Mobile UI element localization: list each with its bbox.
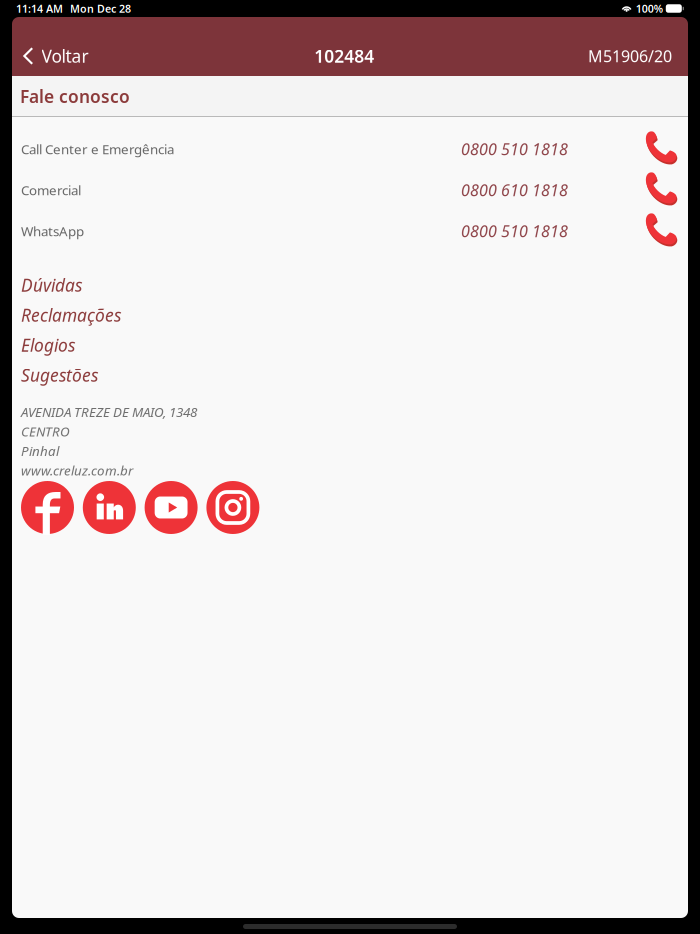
staticText: Sugestões	[21, 363, 98, 386]
staticText: Comercial	[21, 181, 81, 199]
button[interactable]: LinkedIn	[83, 481, 136, 534]
button[interactable]: Call Center e Emergência	[12, 128, 688, 169]
button[interactable]: YouTube	[145, 481, 198, 534]
staticText: 100%	[636, 1, 663, 16]
button[interactable]: Dúvidas	[12, 270, 688, 300]
button[interactable]: Facebook	[21, 481, 74, 534]
button[interactable]: Instagram	[206, 481, 259, 534]
staticText: 0800 510 1818	[461, 138, 568, 160]
staticText: www.creluz.com.br	[21, 461, 133, 479]
staticText: 11:14 AM	[16, 1, 63, 16]
staticText: 102484	[314, 44, 374, 67]
staticText: Reclamações	[21, 303, 121, 326]
button[interactable]: Comercial	[12, 169, 688, 210]
staticText: Call Center e Emergência	[21, 140, 174, 158]
staticText: AVENIDA TREZE DE MAIO, 1348	[21, 403, 197, 421]
button[interactable]: Elogios	[12, 330, 688, 360]
button[interactable]: Reclamações	[12, 300, 688, 330]
staticText: 0800 510 1818	[461, 220, 568, 242]
button[interactable]: Voltar	[12, 36, 100, 76]
staticText: Dúvidas	[21, 273, 82, 296]
staticText: WhatsApp	[21, 222, 84, 240]
staticText: M51906/20	[588, 45, 672, 67]
staticText: Elogios	[21, 333, 75, 356]
staticText: Voltar	[41, 44, 88, 67]
staticText: CENTRO	[21, 422, 70, 440]
staticText: Pinhal	[21, 442, 59, 460]
staticText: Fale conosco	[20, 85, 130, 108]
staticText: 0800 610 1818	[461, 179, 568, 201]
button[interactable]: Sugestões	[12, 360, 688, 390]
button[interactable]: WhatsApp	[12, 210, 688, 251]
staticText: Mon Dec 28	[70, 1, 131, 16]
